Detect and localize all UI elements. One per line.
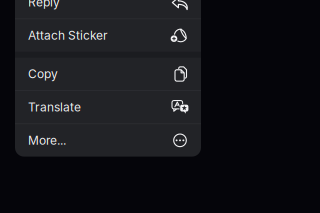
staticText: Attach Sticker	[28, 28, 108, 43]
button[interactable]: Attach Sticker	[15, 19, 201, 52]
staticText: Reply	[28, 0, 60, 9]
button[interactable]: More...	[15, 124, 201, 157]
button[interactable]: Translate	[15, 91, 201, 123]
staticText: Translate	[28, 100, 81, 114]
button[interactable]: Copy	[15, 58, 201, 90]
staticText: More...	[28, 133, 66, 148]
staticText: Copy	[28, 67, 58, 81]
button[interactable]: Reply	[15, 0, 201, 18]
